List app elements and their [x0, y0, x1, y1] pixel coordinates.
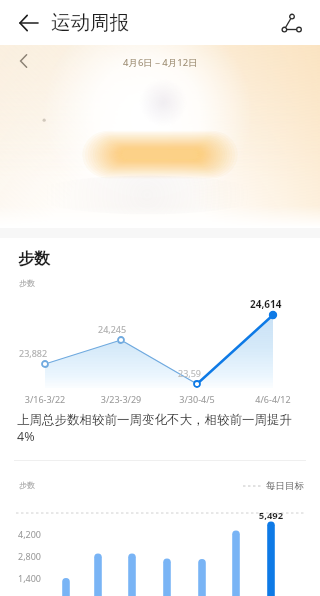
- staticText: 3/16-3/22: [11, 393, 79, 405]
- staticText: 3/23-3/29: [87, 393, 155, 405]
- staticText: 4,200: [18, 528, 42, 540]
- staticText: 4月6日－4月12日: [123, 56, 198, 69]
- button[interactable]: Share: [278, 9, 306, 37]
- staticText: 1,400: [18, 572, 42, 584]
- staticText: 步数: [19, 480, 35, 490]
- staticText: 23,59: [178, 367, 202, 379]
- button[interactable]: Back: [14, 8, 44, 38]
- staticText: 5,492: [243, 509, 299, 522]
- staticText: 每日目标: [266, 480, 304, 492]
- button[interactable]: Previous week: [12, 51, 36, 75]
- staticText: 2,800: [18, 550, 42, 562]
- staticText: 4/6-4/12: [239, 393, 307, 405]
- staticText: 步数: [18, 249, 50, 269]
- staticText: 3/30-4/5: [163, 393, 231, 405]
- staticText: 运动周报: [51, 10, 129, 35]
- staticText: 24,245: [98, 323, 127, 335]
- staticText: 24,614: [250, 297, 282, 311]
- staticText: 步数: [19, 278, 35, 288]
- staticText: 上周总步数相较前一周变化不大，相较前一周提升4%: [17, 412, 305, 444]
- staticText: 23,882: [19, 347, 48, 359]
